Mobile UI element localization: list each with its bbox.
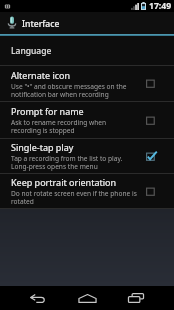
button[interactable]: Home: [67, 286, 107, 310]
staticText: Use "•" and obscure messages on the noti…: [11, 82, 127, 99]
button[interactable]: Back: [17, 286, 57, 310]
staticText: Single-tap play: [11, 141, 74, 153]
staticText: Prompt for name: [11, 105, 84, 117]
button[interactable]: Single-tap play: [0, 139, 174, 173]
button[interactable]: Prompt for name: [0, 102, 174, 138]
button[interactable]: Keep portrait orientation: [0, 174, 174, 208]
staticText: Keep portrait orientation: [11, 176, 117, 188]
staticText: Tap a recording from the list to play. L…: [11, 154, 123, 171]
staticText: Ask to rename recording when recording i…: [11, 118, 107, 135]
staticText: Interface: [22, 18, 60, 30]
staticText: Language: [11, 45, 52, 57]
button[interactable]: Alternate icon: [0, 66, 174, 101]
button[interactable]: Recent apps: [116, 286, 156, 310]
staticText: Do not rotate screen even if the phone i…: [11, 189, 137, 206]
button[interactable]: Interface: [0, 12, 174, 34]
staticText: 17:49: [149, 0, 172, 12]
staticText: Alternate icon: [11, 69, 71, 81]
